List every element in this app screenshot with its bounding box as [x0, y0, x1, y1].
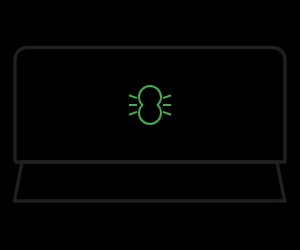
button[interactable]: Debug bug report illustration	[0, 0, 300, 250]
